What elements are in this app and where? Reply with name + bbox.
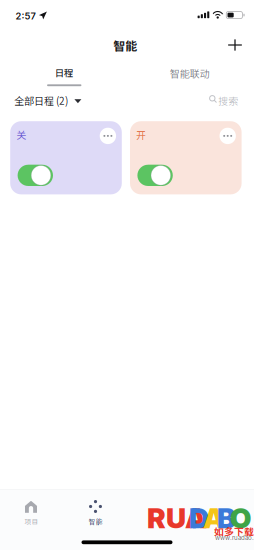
button[interactable]: 项目 [0, 489, 63, 533]
staticText: A [203, 501, 225, 535]
staticText: 2:57 [15, 10, 35, 22]
staticText: 如多下载网 [214, 524, 254, 538]
staticText: 开 [136, 127, 146, 142]
staticText: 日程 [55, 65, 73, 79]
staticText: D [189, 501, 209, 535]
button[interactable]: 场景 开 [130, 121, 242, 194]
button[interactable]: 全部日程 (2) [14, 93, 96, 113]
staticText: www.ruadao.com [215, 534, 254, 541]
staticText: 关 [16, 127, 26, 142]
staticText: 智能 [89, 516, 103, 526]
staticText: 项目 [24, 516, 38, 526]
button[interactable]: 场景 关 [10, 121, 122, 194]
staticText: B [217, 501, 236, 535]
button[interactable]: 智能联动 [135, 65, 245, 95]
button[interactable]: Add scene [219, 32, 251, 58]
staticText: 全部日程 (2) [14, 93, 68, 108]
staticText: 智能联动 [170, 66, 210, 80]
staticText: RUA [147, 501, 207, 535]
button[interactable]: 日程 [8, 65, 118, 95]
staticText: O [230, 501, 251, 535]
staticText: 搜索 [218, 93, 238, 108]
staticText: 智能 [113, 37, 137, 54]
button[interactable]: 智能 [64, 489, 127, 533]
button[interactable]: 搜索 [209, 93, 243, 113]
